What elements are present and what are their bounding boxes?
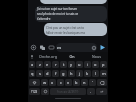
button[interactable]: Backspace xyxy=(97,79,107,86)
button[interactable]: z xyxy=(36,61,43,68)
staticText: s xyxy=(39,71,41,76)
button[interactable]: Shift xyxy=(29,79,40,86)
staticText: q xyxy=(31,71,34,76)
button[interactable]: l xyxy=(92,70,99,77)
staticText: ?123 xyxy=(31,90,38,94)
staticText: ' xyxy=(92,80,93,85)
staticText: a xyxy=(31,62,34,67)
button[interactable]: t xyxy=(60,61,67,68)
button[interactable]: ?123 xyxy=(29,88,40,95)
staticText: w xyxy=(43,80,47,85)
button[interactable]: y xyxy=(68,61,75,68)
button[interactable] xyxy=(56,43,97,52)
button[interactable]: j xyxy=(76,70,83,77)
button[interactable]: b xyxy=(73,79,80,86)
staticText: t xyxy=(63,62,65,67)
button[interactable]: Nous xyxy=(84,52,108,61)
staticText: i xyxy=(87,62,89,67)
staticText: e xyxy=(46,62,49,67)
button[interactable]: ' xyxy=(89,79,96,86)
button[interactable]: i xyxy=(84,61,91,68)
button[interactable]: w xyxy=(41,79,48,86)
staticText: d xyxy=(46,71,49,76)
staticText: z xyxy=(39,62,41,67)
button[interactable]: Space xyxy=(50,88,86,95)
staticText: h xyxy=(70,71,73,76)
staticText: . xyxy=(90,89,92,94)
button[interactable]: h xyxy=(68,70,75,77)
button[interactable]: Stickers xyxy=(38,43,47,52)
staticText: j xyxy=(79,71,81,76)
staticText: b xyxy=(75,80,78,85)
button[interactable]: Onche.org xyxy=(36,52,60,61)
button[interactable]: k xyxy=(84,70,91,77)
button[interactable]: u xyxy=(76,61,83,68)
staticText: v xyxy=(67,80,70,85)
button[interactable]: x xyxy=(49,79,56,86)
button[interactable]: s xyxy=(36,70,43,77)
staticText: m xyxy=(102,71,106,76)
button[interactable]: p xyxy=(100,61,107,68)
staticText: Onche.org xyxy=(39,54,57,59)
button[interactable]: Gif xyxy=(47,43,56,52)
button[interactable]: Emoji xyxy=(41,88,49,95)
staticText: k xyxy=(86,71,89,76)
button[interactable]: Add xyxy=(29,43,38,52)
button[interactable]: m xyxy=(100,70,107,77)
staticText: On xyxy=(69,54,75,59)
button[interactable]: g xyxy=(60,70,67,77)
button[interactable]: o xyxy=(92,61,99,68)
staticText: o xyxy=(94,62,97,67)
staticText: C'est pas un sujet c'est un to falloir r… xyxy=(46,26,85,35)
button[interactable]: e xyxy=(44,61,51,68)
staticText: y xyxy=(70,62,73,67)
button[interactable]: n xyxy=(81,79,88,86)
button[interactable]: c xyxy=(57,79,64,86)
staticText: x xyxy=(51,80,54,85)
staticText: l xyxy=(95,71,97,76)
staticText: g xyxy=(62,71,65,76)
staticText: Nous xyxy=(92,54,101,59)
button[interactable]: d xyxy=(44,70,51,77)
button[interactable]: r xyxy=(52,61,59,68)
button[interactable]: Enter xyxy=(96,88,107,95)
button[interactable]: q xyxy=(29,70,35,77)
button[interactable]: Send xyxy=(98,43,107,52)
staticText: u xyxy=(78,62,81,67)
staticText: Francais (AZERTY) xyxy=(57,90,79,94)
button[interactable]: On xyxy=(60,52,84,61)
button[interactable]: f xyxy=(52,70,59,77)
staticText: r xyxy=(55,62,57,67)
staticText: f xyxy=(55,71,57,76)
staticText: c xyxy=(60,80,62,85)
staticText: n xyxy=(83,80,86,85)
button[interactable]: v xyxy=(65,79,72,86)
staticText: p xyxy=(102,62,105,67)
button[interactable]: Voice input xyxy=(28,52,36,61)
button[interactable]: . xyxy=(87,88,95,95)
button[interactable]: a xyxy=(29,61,35,68)
staticText: J'ai vu ton sujet sur ton forum seul pho… xyxy=(37,7,79,21)
